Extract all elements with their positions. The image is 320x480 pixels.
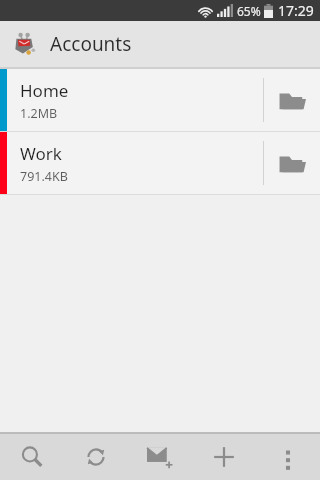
button[interactable]: Search <box>0 434 64 480</box>
staticText: Work <box>20 142 62 165</box>
button[interactable]: Open Work folder <box>264 132 320 194</box>
button[interactable]: Compose mail <box>128 434 192 480</box>
staticText: Home <box>20 79 69 102</box>
button[interactable]: More options <box>256 434 320 480</box>
button[interactable]: Open Home folder <box>264 69 320 131</box>
staticText: 17:29 <box>278 1 314 20</box>
staticText: 65% <box>237 3 261 19</box>
button[interactable]: Work <box>0 132 320 194</box>
staticText: 1.2MB <box>20 105 58 122</box>
button[interactable]: Add account <box>192 434 256 480</box>
staticText: 791.4KB <box>20 168 68 185</box>
button[interactable]: Refresh <box>64 434 128 480</box>
button[interactable]: Home <box>0 69 320 131</box>
staticText: Accounts <box>50 31 132 57</box>
